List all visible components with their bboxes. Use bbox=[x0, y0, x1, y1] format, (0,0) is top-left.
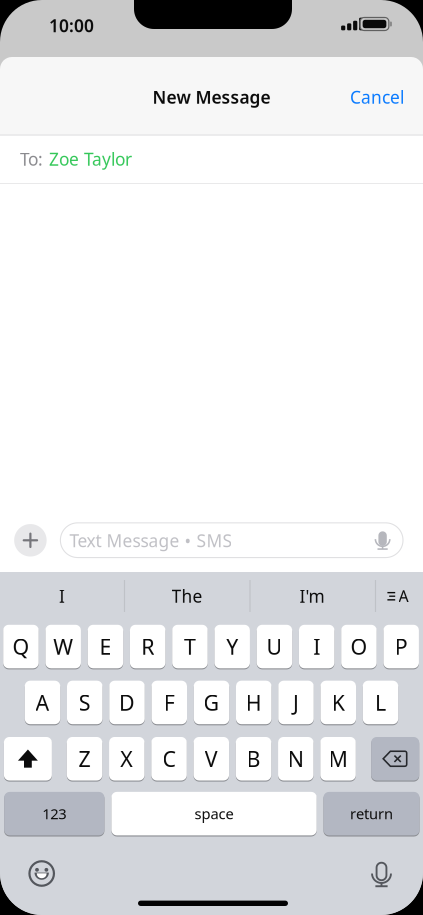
staticText: I bbox=[313, 632, 320, 661]
staticText: B bbox=[247, 745, 261, 773]
staticText: To: bbox=[20, 147, 43, 170]
button[interactable]: V bbox=[194, 736, 229, 781]
staticText: N bbox=[288, 745, 304, 773]
staticText: A bbox=[35, 688, 49, 717]
staticText: P bbox=[395, 632, 408, 661]
button[interactable] bbox=[14, 524, 47, 556]
staticText: Cancel bbox=[350, 85, 404, 108]
staticText: W bbox=[53, 632, 73, 661]
staticText: H bbox=[246, 688, 262, 717]
button[interactable]: space bbox=[111, 791, 317, 836]
staticText: 10:00 bbox=[49, 14, 94, 37]
staticText: Q bbox=[12, 632, 29, 661]
button[interactable]: Text Message • SMS bbox=[60, 523, 403, 558]
staticText: J bbox=[293, 688, 299, 717]
staticText: L bbox=[375, 688, 386, 717]
staticText: 123 bbox=[42, 804, 66, 823]
button[interactable]: The bbox=[127, 574, 247, 618]
button[interactable]: I'm bbox=[252, 574, 372, 618]
button[interactable]: P bbox=[383, 624, 419, 669]
button[interactable]: H bbox=[236, 680, 271, 725]
staticText: return bbox=[350, 804, 393, 823]
staticText: U bbox=[266, 632, 282, 661]
button[interactable]: Cancel bbox=[350, 85, 404, 108]
staticText: E bbox=[99, 632, 111, 661]
button[interactable]: E bbox=[88, 624, 123, 669]
staticText: The bbox=[171, 584, 202, 607]
staticText: V bbox=[205, 745, 218, 773]
staticText: A bbox=[398, 585, 408, 607]
button[interactable]: U bbox=[257, 624, 292, 669]
staticText: Text Message • SMS bbox=[69, 529, 232, 552]
button[interactable]: F bbox=[151, 680, 187, 725]
staticText: G bbox=[203, 688, 219, 717]
button[interactable]: K bbox=[320, 680, 356, 725]
button[interactable]: B bbox=[236, 736, 271, 781]
button[interactable]: T bbox=[172, 624, 208, 669]
staticText: X bbox=[120, 745, 133, 773]
staticText: F bbox=[164, 688, 175, 717]
button[interactable]: M bbox=[320, 736, 356, 781]
button[interactable]: R bbox=[130, 624, 165, 669]
button[interactable]: I bbox=[2, 574, 122, 618]
staticText: Zoe Taylor bbox=[49, 147, 132, 170]
button[interactable]: Z bbox=[67, 736, 102, 781]
staticText: I'm bbox=[299, 584, 324, 607]
staticText: I bbox=[59, 584, 65, 607]
button[interactable] bbox=[371, 736, 419, 781]
button[interactable]: return bbox=[323, 791, 419, 836]
staticText: S bbox=[79, 688, 91, 717]
staticText: D bbox=[119, 688, 135, 717]
button[interactable]: X bbox=[109, 736, 144, 781]
staticText: space bbox=[195, 804, 234, 823]
button[interactable]: A bbox=[379, 574, 419, 618]
button[interactable]: To: bbox=[20, 135, 423, 183]
button[interactable] bbox=[359, 852, 403, 896]
staticText: R bbox=[141, 632, 154, 661]
button[interactable]: G bbox=[194, 680, 229, 725]
staticText: K bbox=[332, 688, 345, 717]
button[interactable]: N bbox=[278, 736, 314, 781]
staticText: T bbox=[184, 632, 196, 661]
staticText: O bbox=[350, 632, 367, 661]
button[interactable] bbox=[4, 736, 52, 781]
button[interactable]: C bbox=[151, 736, 187, 781]
button[interactable]: J bbox=[278, 680, 314, 725]
button[interactable] bbox=[20, 851, 64, 895]
staticText: M bbox=[329, 745, 348, 773]
button[interactable]: 123 bbox=[4, 791, 104, 836]
staticText: Z bbox=[78, 745, 90, 773]
staticText: Y bbox=[226, 632, 238, 661]
button[interactable]: Q bbox=[3, 624, 39, 669]
button[interactable]: O bbox=[341, 624, 377, 669]
staticText: C bbox=[163, 745, 176, 773]
button[interactable]: D bbox=[109, 680, 145, 725]
button[interactable]: I bbox=[299, 624, 334, 669]
button[interactable]: Y bbox=[214, 624, 250, 669]
button[interactable]: A bbox=[25, 680, 60, 725]
button[interactable]: S bbox=[67, 680, 102, 725]
button[interactable]: L bbox=[363, 680, 398, 725]
button[interactable]: W bbox=[45, 624, 81, 669]
staticText: New Message bbox=[152, 85, 270, 108]
